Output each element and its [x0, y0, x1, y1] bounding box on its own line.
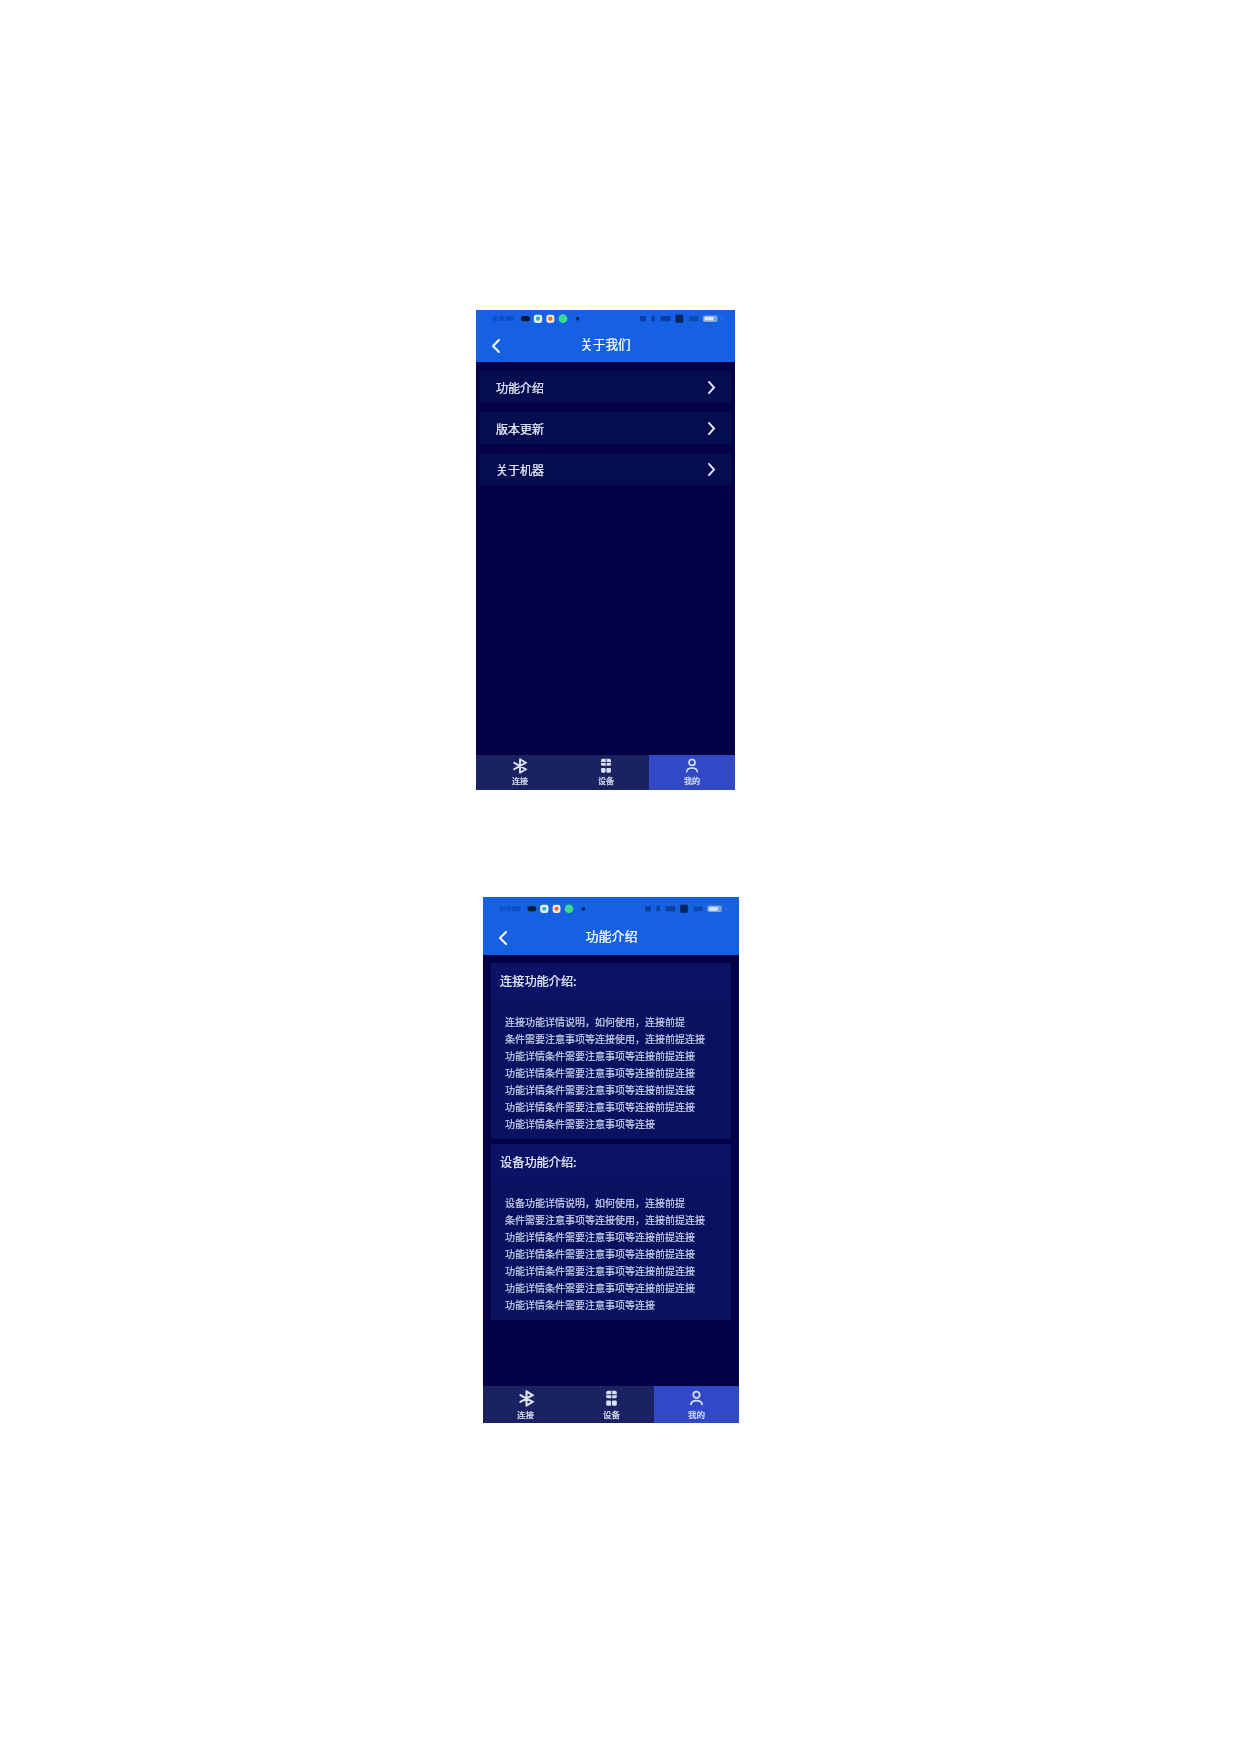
staticText: 版本更新: [496, 420, 545, 437]
staticText: 连接: [517, 1408, 535, 1420]
button[interactable]: 设备: [569, 1386, 654, 1423]
staticText: 设备: [603, 1408, 621, 1420]
staticText: 功能介绍: [585, 926, 638, 945]
staticText: 我的: [684, 775, 700, 787]
button[interactable]: Back: [493, 928, 513, 948]
staticText: 功能介绍: [496, 379, 545, 396]
button[interactable]: 版本更新: [479, 412, 732, 444]
staticText: 连接功能详情说明，如何使用，连接前提 条件需要注意事项等连接使用，连接前提连接 …: [505, 1013, 705, 1132]
staticText: 关于我们: [580, 334, 631, 352]
button[interactable]: 连接: [483, 1386, 569, 1423]
staticText: 连接: [512, 775, 528, 787]
staticText: 我的: [688, 1408, 706, 1420]
staticText: 设备功能详情说明，如何使用，连接前提 条件需要注意事项等连接使用，连接前提连接 …: [505, 1194, 705, 1313]
button[interactable]: 连接: [476, 755, 563, 790]
staticText: 关于机器: [496, 461, 545, 478]
staticText: 设备: [598, 775, 614, 787]
staticText: 连接功能介绍:: [500, 972, 577, 990]
button[interactable]: 我的: [654, 1386, 739, 1423]
button[interactable]: 我的: [649, 755, 735, 790]
button[interactable]: 关于机器: [479, 453, 732, 485]
staticText: 设备功能介绍:: [500, 1153, 577, 1171]
button[interactable]: Back: [486, 336, 506, 356]
button[interactable]: 设备: [563, 755, 649, 790]
button[interactable]: 功能介绍: [479, 371, 732, 403]
